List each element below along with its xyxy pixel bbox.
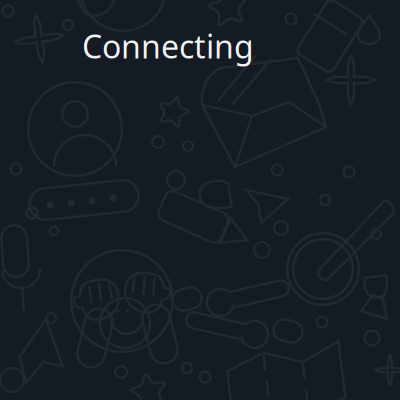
- staticText: Connecting: [82, 25, 254, 67]
